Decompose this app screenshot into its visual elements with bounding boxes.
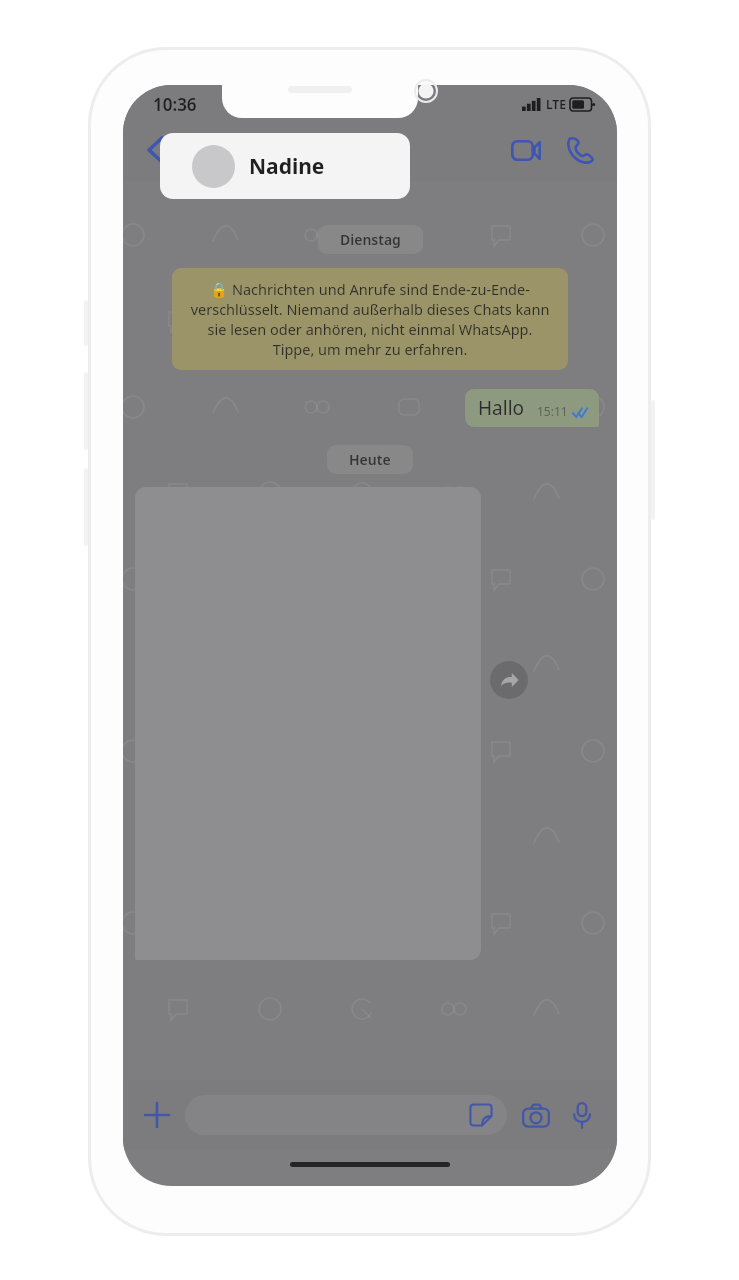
button[interactable]: Anhängen [137,1095,177,1135]
other: Sticker [466,1100,496,1130]
button[interactable]: Kamera [515,1094,557,1136]
staticText: LTE [546,96,566,112]
staticText: 15:11 [537,403,568,419]
button[interactable]: Sticker [185,1095,507,1135]
button[interactable]: Nadine [160,133,410,199]
button[interactable]: Videoanruf [503,127,549,173]
staticText: Nadine [249,152,325,181]
button[interactable]: Sprachnachricht [561,1094,603,1136]
staticText: 10:36 [153,93,197,116]
button[interactable]: Dienstag [318,225,423,254]
staticText: Dienstag [340,230,401,249]
button[interactable]: Heute [327,445,413,474]
button[interactable]: Anruf [557,127,603,173]
button[interactable]: Weiterleiten [490,661,528,699]
staticText: 🔒 Nachrichten und Anrufe sind Ende-zu-En… [186,279,554,359]
button[interactable]: 🔒 Nachrichten und Anrufe sind Ende-zu-En… [172,268,568,370]
button[interactable]: Zurück [133,128,177,172]
staticText: Heute [349,450,391,469]
button[interactable]: Hallo [465,389,599,427]
staticText: Hallo [478,395,525,421]
